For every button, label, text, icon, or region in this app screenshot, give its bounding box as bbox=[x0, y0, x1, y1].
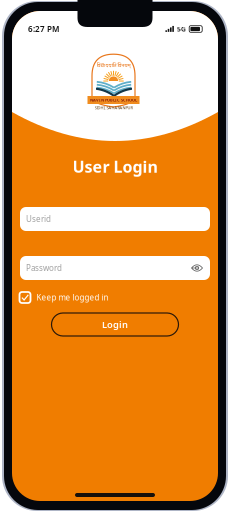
staticText: Userid bbox=[26, 214, 51, 224]
staticText: User Login bbox=[72, 156, 157, 177]
staticText: 5G bbox=[177, 25, 186, 33]
staticText: SIDHI, SAHARANPUR bbox=[94, 105, 132, 110]
staticText: Login bbox=[102, 318, 128, 331]
staticText: विद्या ददाति विनयम् bbox=[96, 61, 130, 69]
button[interactable]: Login bbox=[51, 313, 178, 336]
staticText: Keep me logged in bbox=[36, 292, 108, 303]
button[interactable]: Keep me logged in bbox=[19, 292, 210, 303]
staticText: Password bbox=[26, 263, 62, 273]
staticText: NAVIN PUBLIC SCHOOL bbox=[90, 97, 137, 103]
staticText: 6:27 PM bbox=[28, 24, 59, 34]
